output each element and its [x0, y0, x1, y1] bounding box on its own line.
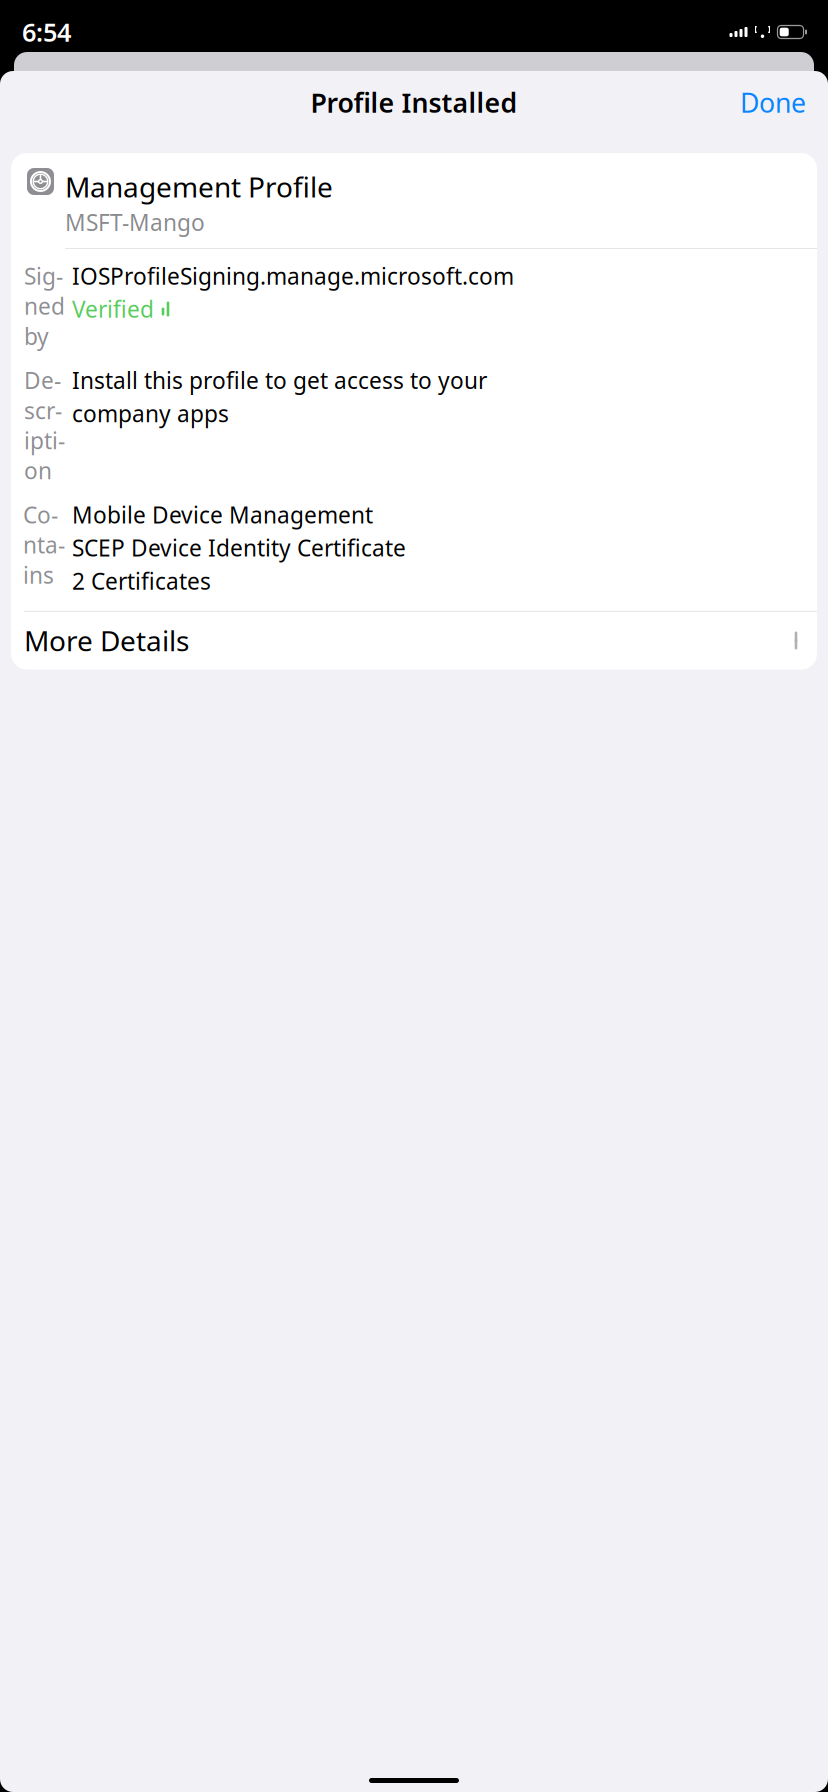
staticText: 6:54	[22, 15, 71, 49]
staticText: Description	[24, 365, 65, 486]
staticText: MSFT-Mango	[65, 207, 205, 237]
staticText: 2 Certificates	[72, 566, 211, 596]
staticText: Signed by	[24, 261, 65, 351]
staticText: SCEP Device Identity Certificate	[72, 533, 406, 563]
staticText: Install this profile to get access to yo…	[72, 365, 487, 395]
button[interactable]: Done	[729, 76, 817, 129]
button[interactable]: More Details	[11, 611, 817, 669]
staticText: company apps	[72, 398, 229, 428]
staticText: IOSProfileSigning.manage.microsoft.com	[72, 261, 514, 291]
staticText: Done	[740, 85, 806, 120]
staticText: Management Profile	[65, 168, 333, 205]
staticText: Profile Installed	[310, 85, 517, 120]
staticText: Mobile Device Management	[72, 500, 373, 530]
staticText: Verified	[72, 294, 154, 324]
staticText: Contains	[23, 500, 65, 590]
staticText: More Details	[24, 622, 189, 659]
